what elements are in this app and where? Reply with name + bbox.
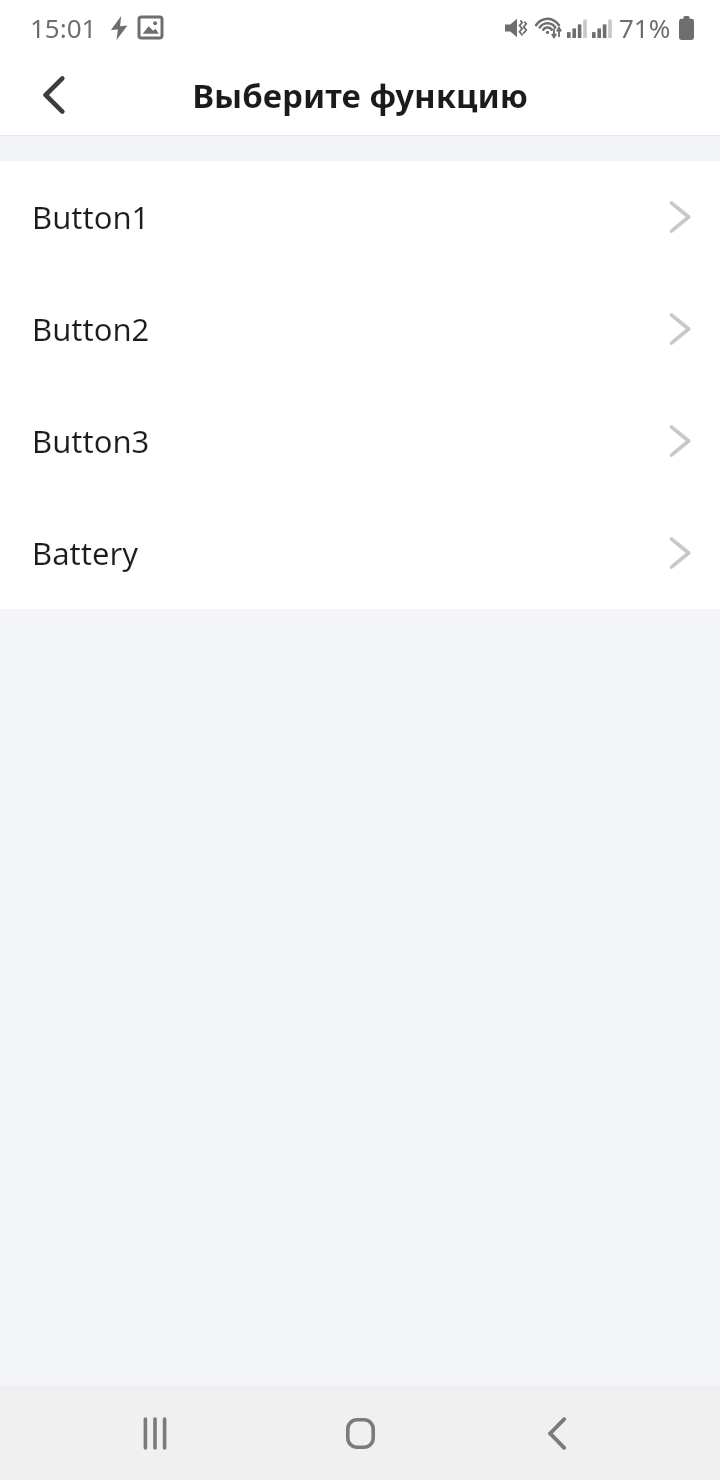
button[interactable]: Button3 — [0, 385, 720, 497]
staticText: 15:01 — [30, 10, 97, 45]
staticText: Button1 — [32, 196, 150, 238]
staticText: Button3 — [32, 420, 150, 462]
staticText: Button2 — [32, 308, 150, 350]
button[interactable]: Battery — [0, 497, 720, 609]
staticText: 71% — [619, 10, 671, 45]
button[interactable]: Recent apps — [110, 1388, 200, 1478]
button[interactable]: Back — [20, 61, 88, 129]
staticText: Battery — [32, 532, 139, 574]
button[interactable]: Home — [315, 1388, 405, 1478]
button[interactable]: Back — [512, 1388, 602, 1478]
staticText: Выберите функцию — [0, 73, 720, 118]
button[interactable]: Button1 — [0, 161, 720, 273]
button[interactable]: Button2 — [0, 273, 720, 385]
